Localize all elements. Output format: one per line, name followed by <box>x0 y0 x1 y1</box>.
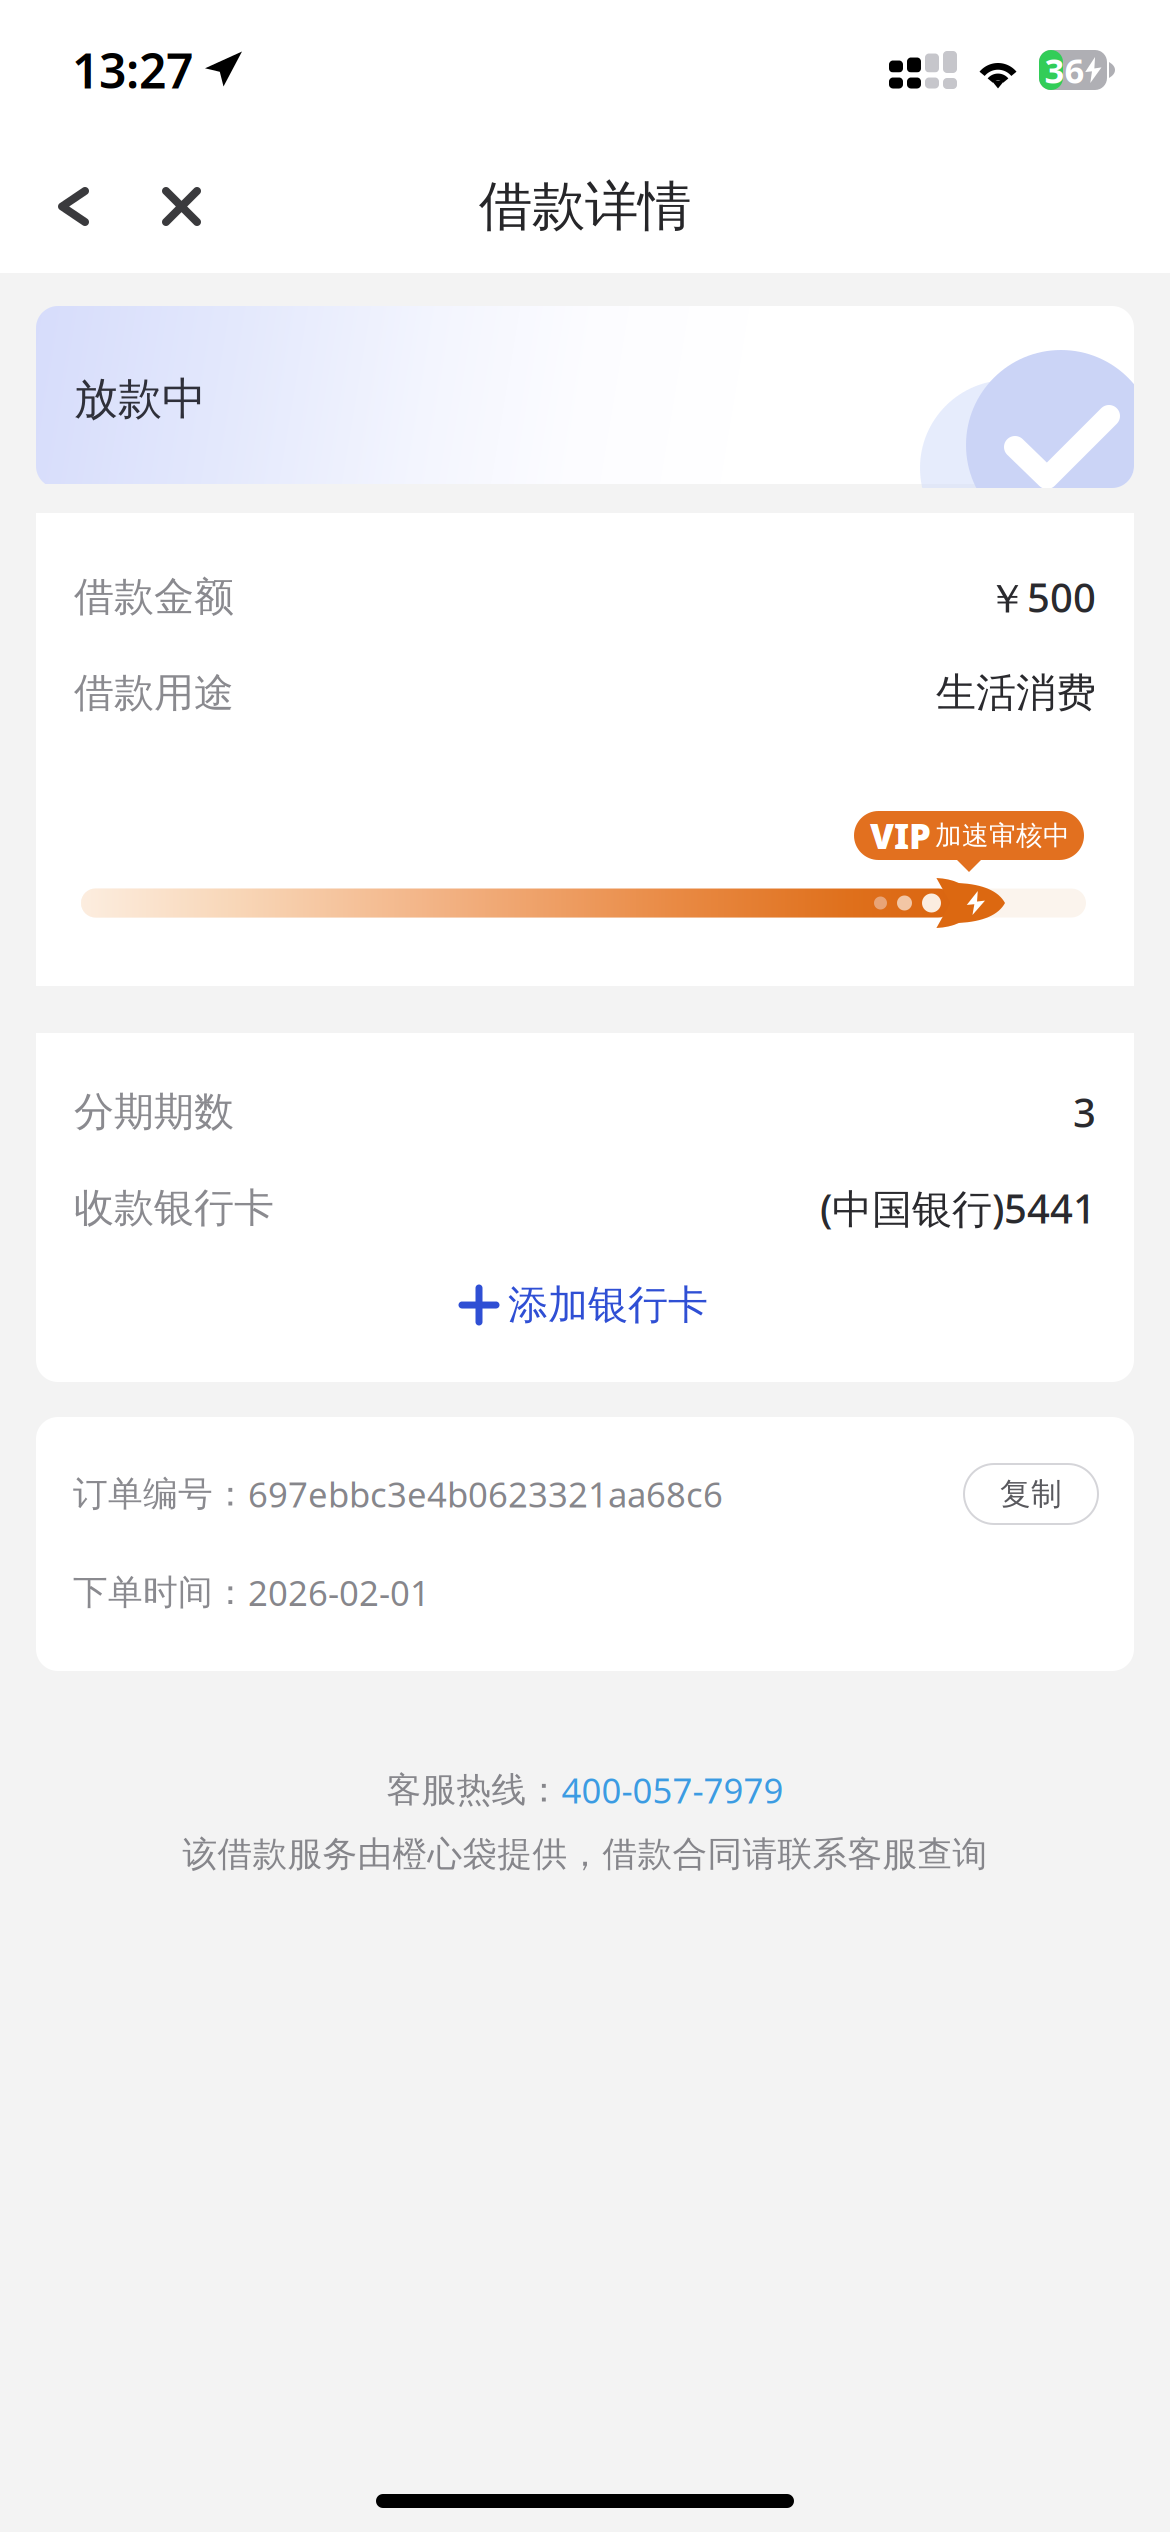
staticText: 放款中 <box>74 372 206 426</box>
staticText: ￥500 <box>987 570 1096 624</box>
staticText: (中国银行)5441 <box>820 1181 1096 1234</box>
staticText: 借款详情 <box>479 174 691 239</box>
staticText: 3 <box>1073 1085 1096 1138</box>
staticText: 借款用途 <box>74 668 234 717</box>
button[interactable]: Back <box>33 160 115 253</box>
button[interactable]: 添加银行卡 <box>36 1256 1134 1354</box>
staticText: 下单时间： <box>73 1571 248 1614</box>
staticText: 加速审核中 <box>935 819 1070 852</box>
staticText: 收款银行卡 <box>74 1183 274 1232</box>
staticText: 客服热线： <box>386 1769 561 1811</box>
staticText: 借款金额 <box>74 572 234 621</box>
staticText: 订单编号： <box>73 1473 248 1515</box>
staticText: 添加银行卡 <box>508 1280 708 1329</box>
staticText: 分期期数 <box>74 1087 234 1136</box>
staticText: 该借款服务由橙心袋提供，借款合同请联系客服查询 <box>182 1833 987 1876</box>
staticText: 697ebbc3e4b0623321aa68c6 <box>248 1471 723 1517</box>
button[interactable]: 复制 <box>964 1464 1098 1524</box>
staticText: VIP <box>870 812 931 858</box>
staticText: 36 <box>1044 47 1084 93</box>
button[interactable]: 400-057-7979 <box>561 1767 783 1813</box>
staticText: 2026-02-01 <box>248 1569 430 1615</box>
staticText: 生活消费 <box>936 668 1096 717</box>
button[interactable]: Close <box>115 160 229 253</box>
staticText: 400-057-7979 <box>561 1767 783 1813</box>
staticText: 13:27 <box>72 38 193 102</box>
staticText: 复制 <box>1000 1475 1062 1513</box>
